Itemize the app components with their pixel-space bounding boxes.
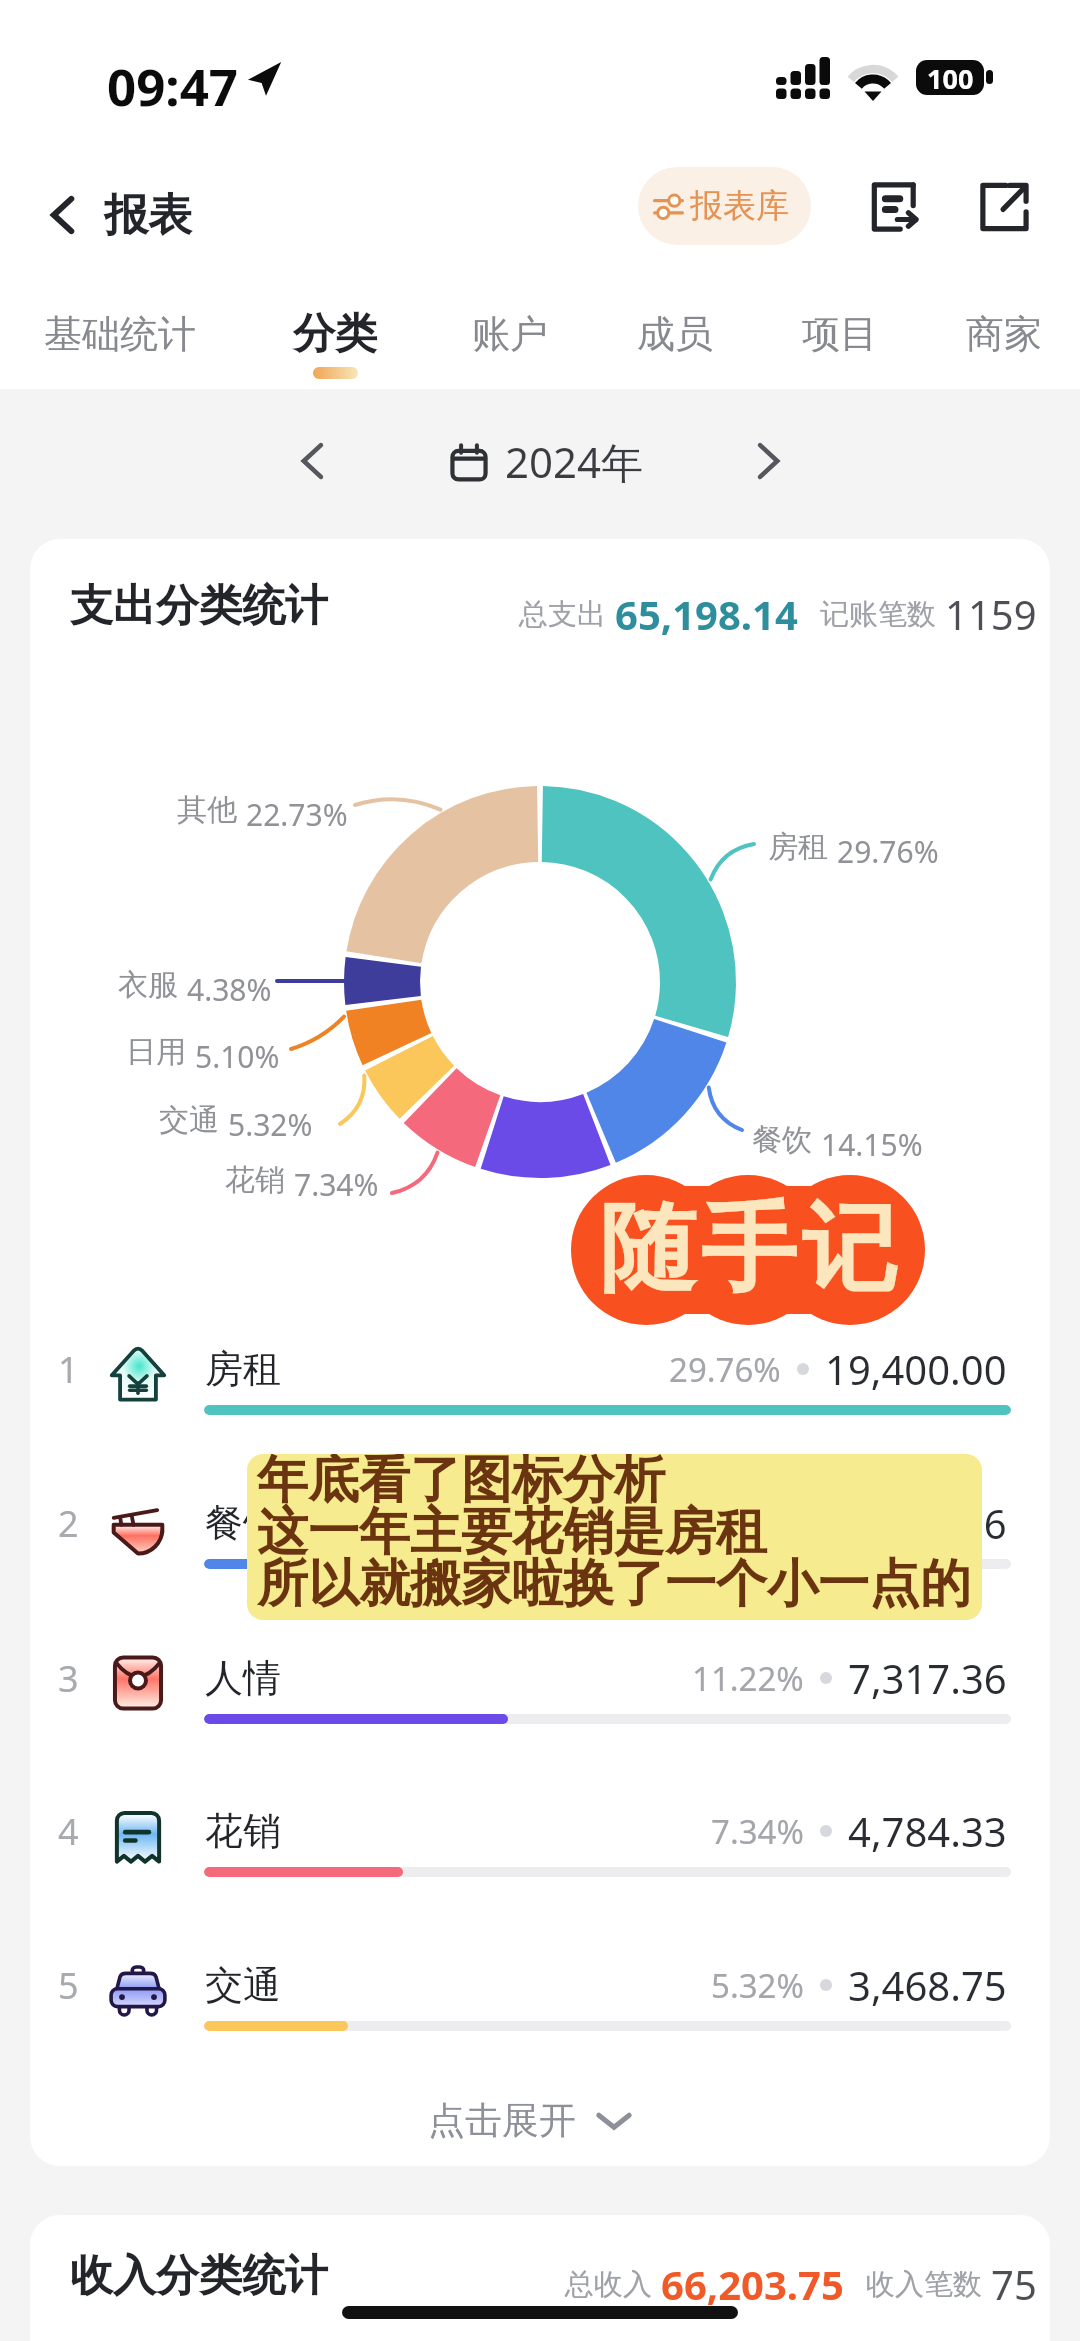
staticText: 衣服	[118, 966, 178, 1004]
staticText: 5	[58, 1961, 79, 2010]
staticText: 房租	[768, 828, 828, 866]
staticText: 支出分类统计	[70, 579, 328, 633]
staticText: 29.76%	[669, 1347, 781, 1392]
staticText: 7.34%	[711, 1809, 804, 1854]
staticText: 收入分类统计	[70, 2249, 328, 2303]
staticText: 11.22%	[692, 1656, 804, 1701]
staticText: 商家	[966, 310, 1042, 358]
button[interactable]: Share	[980, 183, 1028, 231]
staticText: 1159	[945, 587, 1037, 641]
staticText: 账户	[472, 310, 548, 358]
staticText: 3	[58, 1654, 79, 1703]
button[interactable]: 2024年	[451, 426, 644, 496]
staticText: 日用	[126, 1033, 186, 1071]
staticText: 房租	[205, 1345, 281, 1393]
button[interactable]: Previous year	[280, 428, 346, 494]
staticText: 9,228.16	[848, 1496, 1007, 1550]
button[interactable]: 基础统计	[32, 290, 208, 386]
staticText: 5.32%	[228, 1104, 313, 1145]
staticText: 基础统计	[44, 310, 196, 358]
staticText: 这一年主要花销是房租	[257, 1500, 767, 1564]
staticText: 成员	[637, 310, 713, 358]
staticText: 4,784.33	[848, 1804, 1007, 1858]
button[interactable]: 账户	[460, 290, 560, 386]
staticText: 餐饮	[752, 1121, 812, 1159]
staticText: 所以就搬家啦换了一个小一点的	[257, 1552, 971, 1616]
staticText: 5.10%	[195, 1036, 280, 1077]
staticText: 75	[991, 2257, 1037, 2311]
staticText: 2	[58, 1499, 79, 1548]
other: Back	[40, 192, 86, 238]
staticText: 2024年	[505, 433, 644, 490]
staticText: 交通	[159, 1101, 219, 1139]
staticText: 14.15%	[692, 1501, 804, 1546]
staticText: 交通	[205, 1961, 281, 2009]
staticText: 100	[927, 60, 974, 95]
staticText: 4	[58, 1807, 79, 1856]
button[interactable]: Next year	[735, 428, 801, 494]
button[interactable]: 分类	[281, 290, 389, 386]
staticText: 7,317.36	[848, 1651, 1007, 1705]
staticText: 19,400.00	[825, 1342, 1007, 1396]
button[interactable]: 商家	[954, 290, 1054, 386]
staticText: 1	[58, 1345, 79, 1394]
staticText: 人情	[205, 1654, 281, 1702]
staticText: 14.15%	[821, 1124, 923, 1165]
staticText: 3,468.75	[848, 1958, 1007, 2012]
button[interactable]: 2	[30, 1454, 1050, 1606]
staticText: 项目	[802, 310, 878, 358]
staticText: 收入笔数	[866, 2266, 982, 2303]
staticText: 66,203.75	[661, 2257, 844, 2311]
staticText: 5.32%	[711, 1963, 804, 2008]
button[interactable]: Report settings	[870, 183, 918, 231]
staticText: 点击展开	[428, 2097, 576, 2144]
button[interactable]: 报表库	[638, 167, 811, 245]
staticText: 记账笔数	[820, 596, 936, 633]
button[interactable]: 1	[30, 1300, 1050, 1452]
staticText: 4.38%	[187, 969, 272, 1010]
staticText: 29.76%	[837, 831, 939, 872]
button[interactable]: 项目	[790, 290, 890, 386]
staticText: 09:47	[107, 51, 239, 120]
staticText: 分类	[293, 308, 377, 361]
staticText: 65,198.14	[615, 587, 798, 641]
staticText: 报表库	[690, 185, 789, 227]
staticText: 餐饮	[205, 1499, 281, 1547]
button[interactable]: 成员	[625, 290, 725, 386]
staticText: 随手记	[597, 1189, 900, 1310]
button[interactable]: Back	[0, 160, 212, 270]
button[interactable]: 3	[30, 1609, 1050, 1761]
button[interactable]: 5	[30, 1916, 1050, 2068]
staticText: 总收入	[565, 2266, 652, 2303]
staticText: 花销	[225, 1161, 285, 1199]
button[interactable]: 点击展开	[428, 2078, 668, 2162]
staticText: 7.34%	[294, 1164, 379, 1205]
button[interactable]: 4	[30, 1762, 1050, 1914]
staticText: 其他	[177, 791, 237, 829]
staticText: 花销	[205, 1807, 281, 1855]
staticText: 总支出	[519, 596, 606, 633]
staticText: 报表	[104, 188, 192, 243]
staticText: 年底看了图标分析	[257, 1454, 665, 1512]
staticText: 22.73%	[246, 794, 348, 835]
